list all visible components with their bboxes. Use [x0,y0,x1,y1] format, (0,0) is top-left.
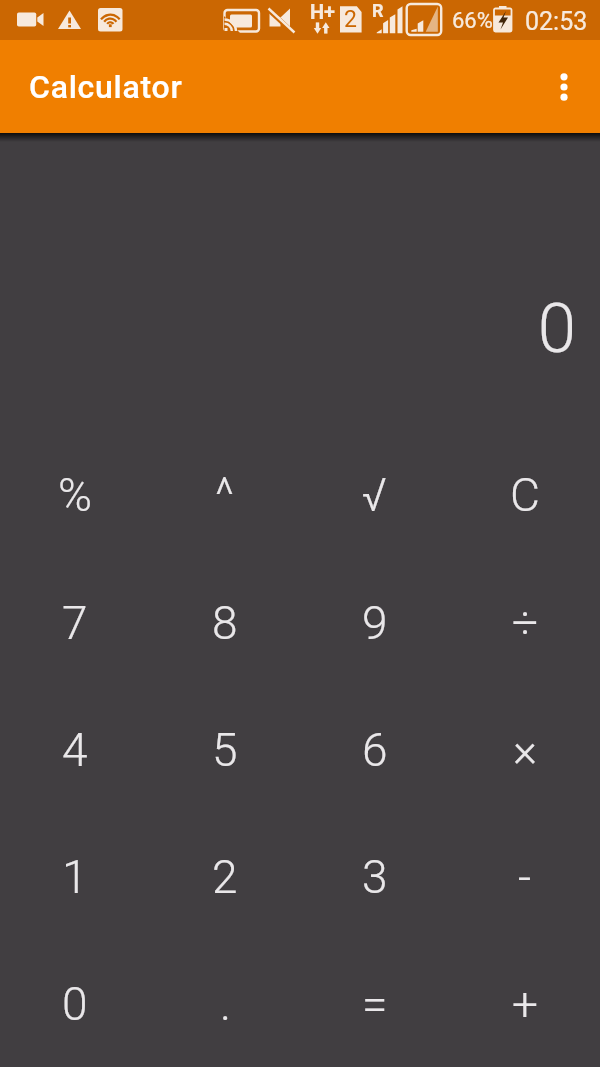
button[interactable]: 5 [150,686,300,813]
button[interactable]: = [300,940,450,1067]
staticText: 3 [362,850,388,904]
staticText: % [58,468,93,522]
staticText: H+ [310,0,336,23]
button[interactable]: 1 [0,813,150,940]
button[interactable]: + [450,940,600,1067]
button[interactable]: . [150,940,300,1067]
staticText: ÷ [512,596,539,650]
button[interactable]: 0 [0,940,150,1067]
staticText: 7 [62,596,88,650]
staticText: 0 [0,288,576,369]
button[interactable]: √ [300,431,450,559]
button[interactable]: 6 [300,686,450,813]
button[interactable]: - [450,813,600,940]
button[interactable]: 2 [150,813,300,940]
button[interactable]: 3 [300,813,450,940]
staticText: 5 [212,723,238,777]
staticText: Calculator [29,68,183,106]
staticText: 66% [452,8,493,34]
button[interactable]: 8 [150,559,300,686]
staticText: - [518,850,532,904]
staticText: 6 [362,723,388,777]
button[interactable]: % [0,431,150,559]
staticText: = [362,977,388,1031]
staticText: 0 [62,977,88,1031]
button[interactable]: More options [540,63,588,111]
staticText: . [220,977,231,1031]
staticText: 2 [212,850,238,904]
staticText: 2 [344,6,357,33]
staticText: + [512,977,538,1031]
button[interactable]: ^ [150,431,300,559]
button[interactable]: × [450,686,600,813]
staticText: R [372,0,384,21]
staticText: 8 [212,596,238,650]
staticText: 02:53 [525,7,588,36]
staticText: √ [362,468,388,522]
button[interactable]: 9 [300,559,450,686]
staticText: 9 [362,596,388,650]
button[interactable]: 7 [0,559,150,686]
staticText: C [510,468,540,522]
staticText: 4 [62,723,88,777]
staticText: 1 [62,850,88,904]
staticText: × [513,723,538,777]
staticText: ^ [215,468,235,522]
button[interactable]: 4 [0,686,150,813]
button[interactable]: ÷ [450,559,600,686]
button[interactable]: C [450,431,600,559]
